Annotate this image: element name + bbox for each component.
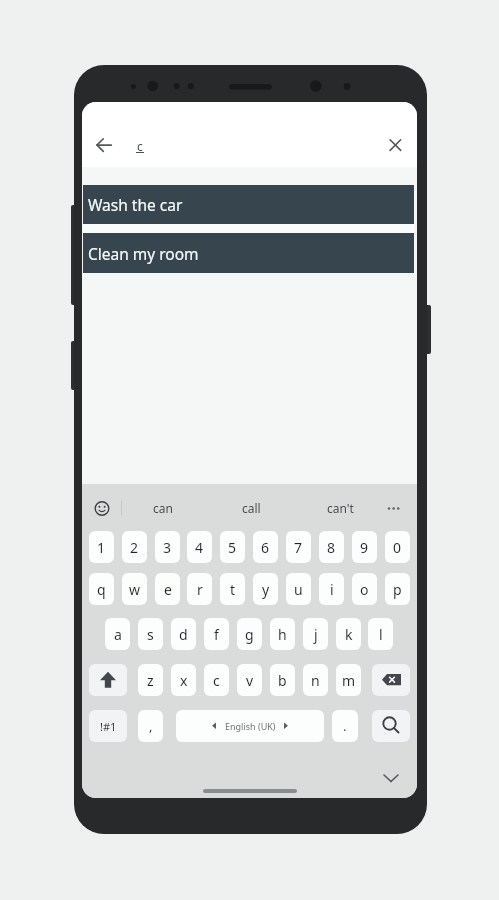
staticText: x — [180, 671, 188, 690]
staticText: v — [246, 671, 254, 690]
staticText: !#1 — [100, 719, 117, 734]
button[interactable]: b — [270, 664, 295, 696]
staticText: g — [245, 625, 254, 644]
button[interactable]: f — [204, 618, 229, 650]
staticText: c — [137, 138, 143, 154]
button[interactable]: t — [220, 573, 245, 605]
staticText: q — [97, 580, 106, 599]
staticText: d — [179, 625, 188, 644]
staticText: t — [230, 580, 236, 599]
staticText: 1 — [97, 538, 106, 557]
button[interactable]: can — [132, 494, 194, 522]
staticText: Clean my room — [88, 243, 199, 264]
staticText: r — [197, 580, 203, 599]
button[interactable]: l — [368, 618, 393, 650]
staticText: c — [213, 671, 220, 690]
button[interactable]: 6 — [253, 531, 278, 563]
staticText: 3 — [163, 538, 172, 557]
button[interactable]: h — [270, 618, 295, 650]
staticText: y — [262, 580, 270, 599]
button[interactable]: 3 — [155, 531, 180, 563]
button[interactable] — [383, 133, 407, 157]
button[interactable]: 2 — [122, 531, 147, 563]
staticText: call — [242, 500, 261, 516]
button[interactable]: a — [105, 618, 130, 650]
button[interactable]: e — [155, 573, 180, 605]
staticText: z — [147, 671, 154, 690]
staticText: j — [314, 625, 318, 644]
button[interactable]: q — [89, 573, 114, 605]
staticText: 4 — [195, 538, 204, 557]
button[interactable]: , — [138, 710, 163, 742]
button[interactable]: y — [253, 573, 278, 605]
button[interactable]: u — [286, 573, 311, 605]
button[interactable]: 1 — [89, 531, 114, 563]
staticText: n — [311, 671, 320, 690]
staticText: u — [294, 580, 303, 599]
staticText: o — [360, 580, 369, 599]
button[interactable]: n — [303, 664, 328, 696]
staticText: 2 — [130, 538, 139, 557]
staticText: Wash the car — [88, 194, 183, 215]
button[interactable] — [372, 664, 410, 696]
button[interactable] — [379, 768, 403, 788]
button[interactable]: 7 — [286, 531, 311, 563]
button[interactable]: English (UK) — [176, 710, 324, 742]
button[interactable]: r — [187, 573, 212, 605]
staticText: w — [129, 580, 141, 599]
button[interactable]: . — [332, 710, 358, 742]
button[interactable]: !#1 — [89, 710, 127, 742]
staticText: f — [214, 625, 219, 644]
staticText: l — [379, 625, 383, 644]
staticText: 6 — [261, 538, 270, 557]
button[interactable]: w — [122, 573, 147, 605]
button[interactable]: p — [385, 573, 410, 605]
button[interactable]: m — [336, 664, 361, 696]
button[interactable]: o — [352, 573, 377, 605]
button[interactable]: z — [138, 664, 163, 696]
staticText: 8 — [327, 538, 336, 557]
button[interactable] — [89, 664, 127, 696]
button[interactable]: 0 — [385, 531, 410, 563]
staticText: . — [343, 717, 347, 735]
button[interactable]: call — [220, 494, 282, 522]
button[interactable] — [382, 496, 406, 520]
button[interactable]: 4 — [187, 531, 212, 563]
button[interactable] — [90, 496, 114, 520]
staticText: can — [153, 500, 173, 516]
staticText: b — [278, 671, 287, 690]
staticText: 9 — [360, 538, 369, 557]
button[interactable]: 5 — [220, 531, 245, 563]
staticText: 7 — [294, 538, 303, 557]
button[interactable]: i — [319, 573, 344, 605]
button[interactable]: Wash the car — [83, 185, 414, 224]
staticText: k — [345, 625, 353, 644]
staticText: s — [147, 625, 154, 644]
staticText: a — [114, 625, 122, 644]
button[interactable]: x — [171, 664, 196, 696]
staticText: , — [149, 717, 153, 735]
staticText: English (UK) — [225, 720, 276, 732]
button[interactable] — [372, 710, 410, 742]
button[interactable]: g — [237, 618, 262, 650]
button[interactable]: can't — [309, 494, 371, 522]
staticText: 0 — [393, 538, 402, 557]
staticText: m — [342, 671, 356, 690]
staticText: can't — [327, 500, 354, 516]
staticText: 5 — [228, 538, 237, 557]
button[interactable] — [92, 133, 116, 157]
button[interactable]: s — [138, 618, 163, 650]
button[interactable]: k — [336, 618, 361, 650]
button[interactable]: v — [237, 664, 262, 696]
button[interactable]: j — [303, 618, 328, 650]
staticText: p — [393, 580, 402, 599]
button[interactable]: c — [204, 664, 229, 696]
staticText: e — [164, 580, 172, 599]
button[interactable]: 8 — [319, 531, 344, 563]
staticText: h — [278, 625, 287, 644]
staticText: i — [330, 580, 334, 599]
button[interactable]: Clean my room — [83, 233, 414, 273]
button[interactable]: 9 — [352, 531, 377, 563]
button[interactable]: d — [171, 618, 196, 650]
